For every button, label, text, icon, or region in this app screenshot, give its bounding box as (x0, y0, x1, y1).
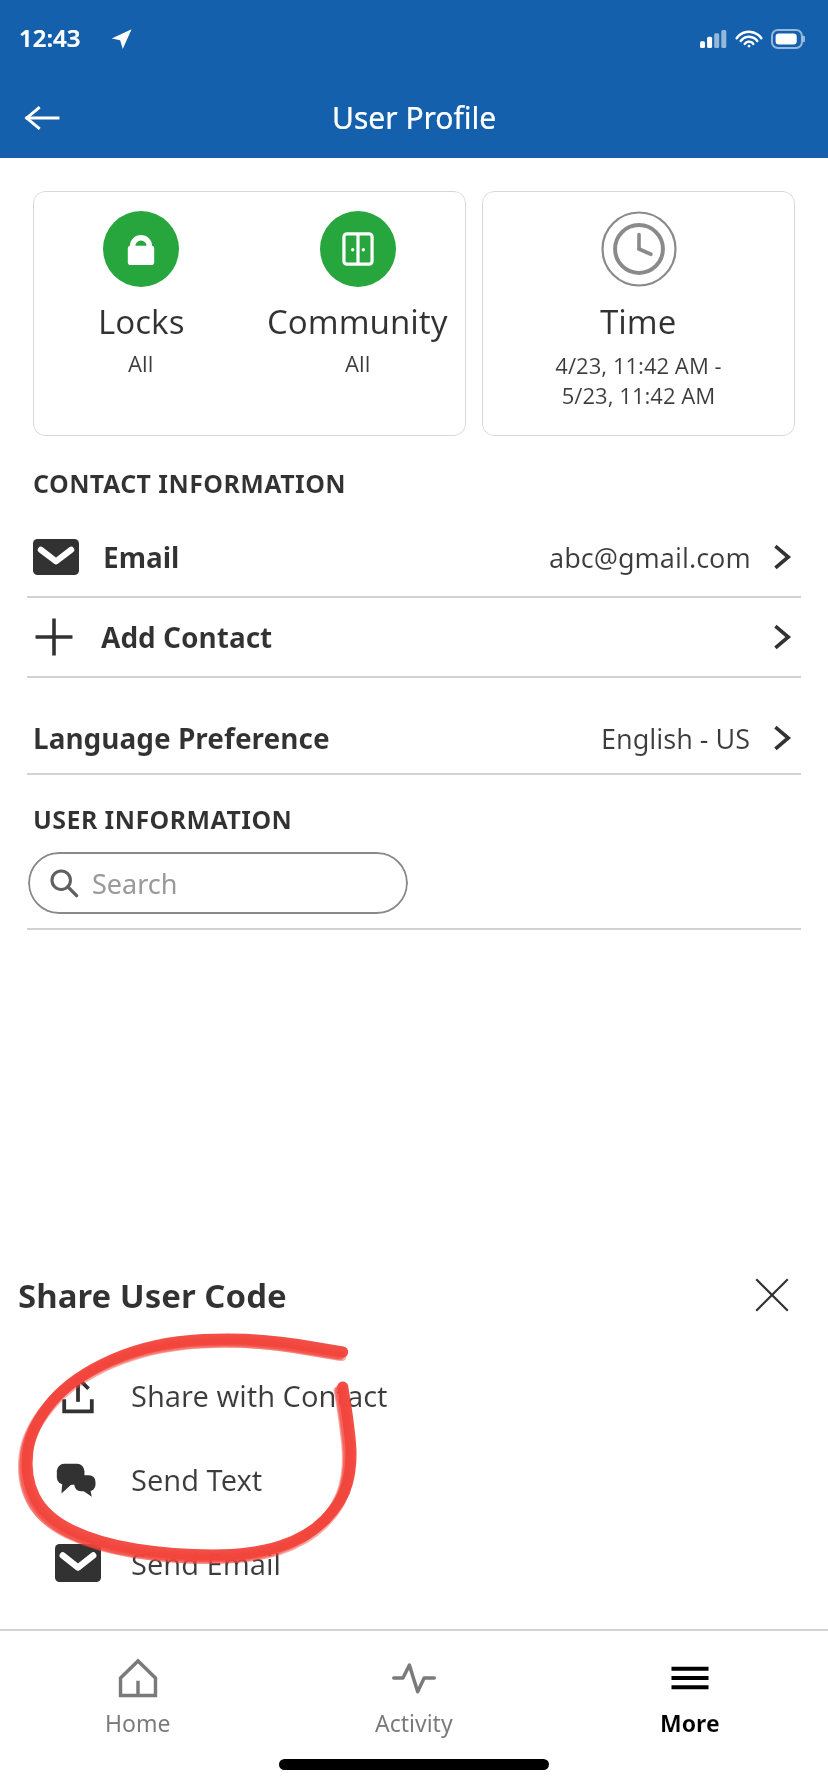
staticText: Share with Contact (131, 1376, 388, 1415)
button[interactable]: Community (249, 191, 466, 436)
staticText: abc@gmail.com (549, 539, 751, 576)
button[interactable]: Search (28, 852, 408, 914)
button[interactable]: Send Text (0, 1437, 828, 1521)
staticText: Send Email (131, 1544, 282, 1583)
staticText: Language Preference (33, 719, 330, 757)
button[interactable]: Home (0, 1651, 276, 1742)
staticText: Search (92, 865, 178, 902)
staticText: All (345, 348, 371, 378)
button[interactable]: Back (12, 88, 72, 148)
staticText: Activity (375, 1707, 453, 1738)
staticText: CONTACT INFORMATION (33, 466, 347, 500)
staticText: Home (105, 1707, 171, 1738)
staticText: More (660, 1707, 720, 1738)
staticText: Community (267, 299, 448, 344)
staticText: Locks (98, 299, 185, 344)
staticText: USER INFORMATION (33, 802, 293, 836)
staticText: Time (600, 299, 677, 344)
staticText: 4/23, 11:42 AM - 5/23, 11:42 AM (555, 350, 722, 410)
button[interactable]: Language Preference (0, 703, 828, 773)
staticText: User Profile (332, 97, 497, 138)
button[interactable]: Share with Contact (0, 1353, 828, 1437)
staticText: English - US (601, 720, 751, 757)
button[interactable]: Send Email (0, 1521, 828, 1605)
button[interactable]: Time (482, 191, 795, 436)
button[interactable]: Locks (33, 191, 466, 436)
staticText: 12:43 (19, 21, 81, 54)
button[interactable]: Email (0, 518, 828, 596)
button[interactable]: Close (744, 1267, 800, 1323)
button[interactable]: Activity (276, 1651, 552, 1742)
staticText: Email (103, 538, 180, 576)
staticText: Share User Code (18, 1273, 287, 1318)
button[interactable]: More (552, 1651, 828, 1742)
staticText: Add Contact (101, 618, 273, 656)
staticText: All (128, 348, 154, 378)
staticText: Send Text (131, 1460, 263, 1499)
button[interactable]: Locks (33, 191, 249, 436)
button[interactable]: Add Contact (0, 598, 828, 676)
